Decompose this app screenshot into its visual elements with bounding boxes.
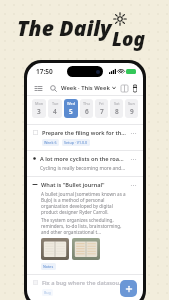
button[interactable]: Search	[48, 83, 58, 93]
staticText: The system organizes scheduling, reminde…	[41, 217, 126, 235]
button[interactable]: Sat	[110, 99, 123, 118]
button[interactable]: Tue	[48, 99, 62, 118]
staticText: 5	[69, 107, 73, 116]
button[interactable]: More options	[129, 129, 137, 137]
button[interactable]: Photo	[41, 238, 69, 260]
staticText: Log	[112, 26, 146, 52]
staticText: Wed	[67, 101, 76, 106]
button[interactable]: Sun	[125, 99, 138, 118]
button[interactable]: A lot more cyclists on the road today	[27, 151, 143, 176]
button[interactable]: Fri	[95, 99, 108, 118]
button[interactable]: Add entry	[120, 280, 137, 297]
staticText: Fri	[99, 101, 104, 106]
staticText: 3	[37, 107, 41, 116]
staticText: 8	[115, 107, 119, 116]
staticText: Sun	[128, 101, 135, 106]
staticText: Cycling is really becoming more and more…	[40, 165, 126, 172]
button[interactable]: Prepare the filing work for the launch..…	[27, 125, 143, 150]
staticText: Week 6	[44, 140, 57, 145]
staticText: 17:50	[36, 67, 53, 76]
button[interactable]: More options	[129, 181, 137, 189]
button[interactable]: Filter	[119, 83, 129, 93]
button[interactable]: Week · This Week	[58, 83, 119, 93]
button[interactable]: Mon	[32, 99, 46, 118]
staticText: 4	[53, 107, 57, 116]
button[interactable]: More options	[129, 155, 137, 163]
staticText: Mon	[35, 101, 44, 106]
staticText: A bullet journal (sometimes known as a B…	[41, 191, 126, 215]
button[interactable]: Thu	[80, 99, 93, 118]
button[interactable]: Wed	[64, 99, 78, 118]
staticText: Notes	[43, 264, 54, 269]
staticText: Tue	[52, 101, 59, 106]
staticText: What is "Bullet journal"	[41, 181, 105, 189]
button[interactable]: What is "Bullet journal"	[27, 177, 143, 274]
staticText: 9	[130, 107, 134, 116]
staticText: A lot more cyclists on the road today	[40, 155, 126, 163]
button[interactable]: Fix a bug where the datasource loses or.…	[27, 275, 143, 300]
staticText: Thu	[83, 101, 90, 106]
button[interactable]: Photo	[72, 238, 100, 260]
staticText: Week · This Week	[61, 84, 110, 92]
staticText: 7	[100, 107, 104, 116]
staticText: 6	[85, 107, 89, 116]
button[interactable]: Calendar	[133, 83, 137, 93]
staticText: Sat	[114, 101, 120, 106]
staticText: Bug	[44, 290, 51, 295]
button[interactable]: Notes	[41, 263, 56, 270]
staticText: Prepare the filing work for the launch..…	[42, 129, 126, 137]
staticText: Setup · V1.0.0	[64, 140, 88, 145]
button[interactable]: More options	[129, 279, 137, 287]
staticText: The Daily	[17, 14, 112, 43]
button[interactable]: Menu	[33, 83, 43, 93]
staticText: Fix a bug where the datasource loses or.…	[42, 279, 126, 287]
